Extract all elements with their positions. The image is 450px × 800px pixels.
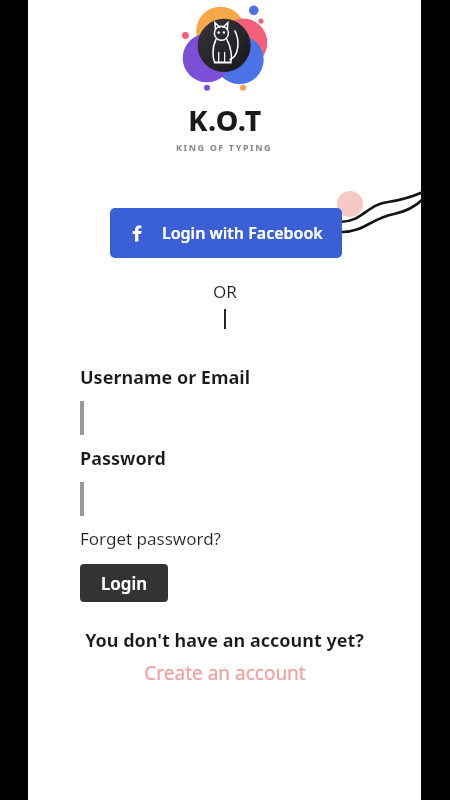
staticText: Login — [101, 572, 148, 595]
staticText: Create an account — [144, 660, 306, 686]
button[interactable]: Create an account — [144, 660, 306, 686]
button[interactable] — [80, 481, 421, 517]
staticText: OR — [213, 280, 237, 303]
button[interactable]: Login with Facebook — [110, 208, 342, 258]
button[interactable] — [80, 400, 421, 436]
staticText: Username or Email — [80, 365, 251, 390]
button[interactable]: Login — [80, 564, 168, 602]
other: K.O.T logo — [180, 4, 270, 94]
staticText: Password — [80, 446, 166, 471]
button[interactable]: Forget password? — [80, 527, 221, 550]
staticText: KING OF TYPING — [176, 141, 273, 153]
staticText: You don't have an account yet? — [85, 628, 364, 653]
staticText: K.O.T — [188, 100, 262, 139]
staticText: Login with Facebook — [162, 222, 323, 244]
